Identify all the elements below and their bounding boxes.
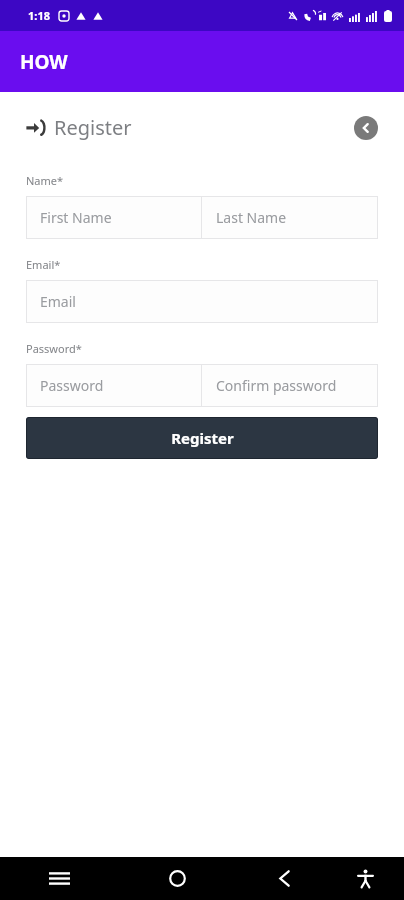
button[interactable]: Register — [26, 417, 378, 459]
staticText: Confirm password — [216, 376, 337, 395]
button[interactable]: Last Name — [202, 196, 378, 239]
button[interactable]: Home — [118, 857, 236, 900]
button[interactable]: Back — [354, 116, 378, 140]
staticText: Password — [40, 376, 104, 395]
staticText: Register — [54, 114, 132, 141]
button[interactable]: Email — [26, 280, 378, 323]
staticText: Register — [171, 428, 234, 448]
button[interactable]: Confirm password — [202, 364, 378, 407]
staticText: Password* — [26, 341, 82, 356]
staticText: Email — [40, 292, 76, 311]
button[interactable]: Recents — [0, 857, 118, 900]
staticText: HOW — [20, 49, 68, 75]
staticText: First Name — [40, 208, 112, 227]
staticText: Email* — [26, 257, 61, 272]
button[interactable]: Back — [236, 857, 332, 900]
button[interactable]: Accessibility — [332, 857, 398, 900]
button[interactable]: First Name — [26, 196, 201, 239]
button[interactable]: Password — [26, 364, 201, 407]
staticText: Name* — [26, 173, 64, 188]
staticText: 1:18 — [28, 8, 50, 23]
staticText: Last Name — [216, 208, 287, 227]
